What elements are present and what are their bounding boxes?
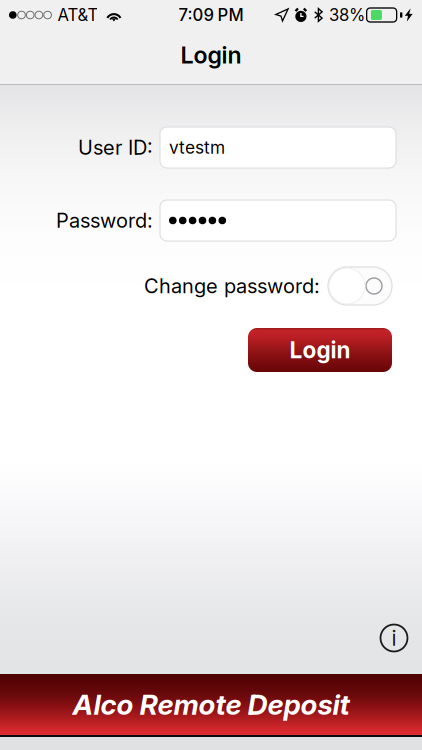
staticText: Login	[289, 336, 350, 364]
staticText: Password:	[56, 208, 153, 233]
staticText: 38%	[329, 5, 365, 25]
button[interactable]: Login	[248, 328, 392, 372]
staticText: User ID:	[78, 135, 153, 160]
staticText: vtestm	[169, 137, 225, 158]
button[interactable]: Change password	[320, 267, 392, 305]
staticText: Alco Remote Deposit	[72, 688, 349, 721]
staticText: Login	[180, 41, 241, 69]
staticText: 7:09 PM	[178, 5, 243, 25]
staticText: Change password:	[144, 274, 320, 298]
staticText: AT&T	[57, 5, 98, 25]
button[interactable]: Info	[377, 621, 411, 655]
staticText: i	[391, 625, 396, 651]
